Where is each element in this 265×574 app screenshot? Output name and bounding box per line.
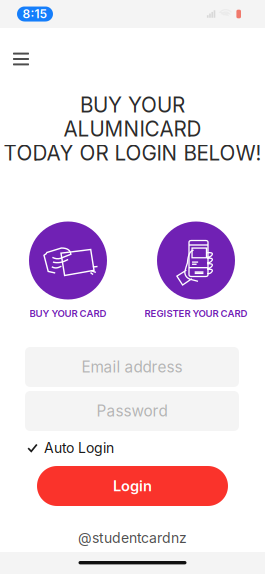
button[interactable]: Menu bbox=[6, 48, 36, 70]
staticText: TODAY OR LOGIN BELOW! bbox=[3, 140, 261, 165]
staticText: Auto Login bbox=[44, 439, 114, 456]
staticText: Login bbox=[113, 477, 152, 495]
staticText: BUY YOUR bbox=[80, 92, 185, 117]
button[interactable]: REGISTER YOUR CARD bbox=[141, 221, 251, 318]
staticText: @studentcardnz bbox=[78, 529, 187, 546]
button[interactable]: Email address bbox=[25, 347, 239, 387]
staticText: Email address bbox=[81, 358, 182, 376]
button[interactable]: Auto Login bbox=[28, 439, 138, 456]
staticText: ALUMNICARD bbox=[63, 116, 201, 141]
staticText: Password bbox=[96, 402, 167, 420]
button[interactable]: BUY YOUR CARD bbox=[13, 221, 123, 318]
staticText: BUY YOUR CARD bbox=[29, 308, 106, 319]
staticText: 8:15 bbox=[22, 7, 47, 21]
button[interactable]: Password bbox=[25, 391, 239, 431]
staticText: REGISTER YOUR CARD bbox=[144, 308, 247, 319]
button[interactable]: Login bbox=[37, 466, 228, 506]
